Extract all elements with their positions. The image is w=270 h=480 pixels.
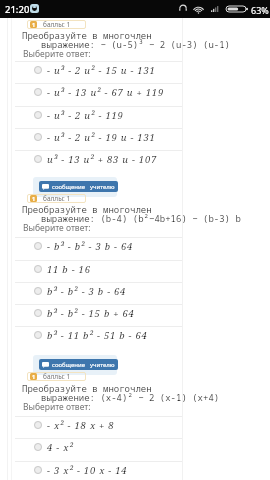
button[interactable]: 1 — [27, 20, 86, 29]
button[interactable]: 1 — [27, 194, 86, 203]
staticText: выражение: (b-4) (b²−4b+16) − (b-3) b — [41, 212, 241, 224]
button[interactable]: − b³ − b² − 3 b − 64 — [15, 237, 182, 259]
button[interactable]: − u³ − 2 u² − 119 — [15, 106, 182, 128]
button[interactable]: b³ − b² − 3 b − 64 — [15, 282, 182, 304]
button[interactable]: 4 − x² — [15, 438, 182, 460]
staticText: баллы: 1 — [43, 372, 71, 381]
staticText: b³ − b² − 3 b − 64 — [47, 285, 127, 298]
staticText: учителю — [90, 183, 115, 191]
staticText: Выберите ответ: — [23, 48, 91, 60]
button[interactable]: − x² − 18 x + 8 — [15, 416, 182, 438]
staticText: − u³ − 2 u² − 19 u − 131 — [47, 131, 156, 144]
button[interactable]: u³ − 13 u² + 83 u − 107 — [15, 150, 182, 172]
staticText: баллы: 1 — [43, 20, 71, 29]
staticText: 4 − x² — [47, 441, 74, 454]
staticText: выражение: − (u-5)³ − 2 (u-3) (u-1) — [41, 38, 231, 50]
staticText: Выберите ответ: — [23, 401, 91, 413]
button[interactable]: 1 — [27, 372, 86, 381]
staticText: 1 — [32, 195, 36, 202]
staticText: 1 — [32, 21, 36, 28]
staticText: выражение: (x-4)² − 2 (x-1) (x+4) — [41, 391, 220, 403]
staticText: сообщение — [52, 183, 86, 191]
staticText: Преобразуйте в многочлен — [22, 382, 152, 394]
button[interactable]: − u³ − 13 u² − 67 u + 119 — [15, 83, 182, 105]
staticText: учителю — [90, 361, 115, 369]
button[interactable]: сообщение — [39, 181, 118, 192]
staticText: − u³ − 2 u² − 15 u − 131 — [47, 64, 156, 77]
staticText: − 3 x² − 10 x − 14 — [47, 464, 128, 477]
staticText: − b³ − b² − 3 b − 64 — [47, 240, 134, 253]
button[interactable]: 11 b − 16 — [15, 260, 182, 282]
button[interactable]: b³ − b² − 15 b + 64 — [15, 304, 182, 326]
staticText: 21:20 — [5, 3, 30, 16]
staticText: 63% — [251, 4, 269, 16]
staticText: Выберите ответ: — [23, 222, 91, 234]
staticText: баллы: 1 — [43, 194, 71, 203]
staticText: − x² − 18 x + 8 — [47, 419, 115, 432]
staticText: − u³ − 13 u² − 67 u + 119 — [47, 86, 164, 99]
staticText: 1 — [32, 373, 36, 380]
button[interactable]: − u³ − 2 u² − 19 u − 131 — [15, 128, 182, 150]
staticText: b³ − b² − 15 b + 64 — [47, 307, 135, 320]
staticText: Преобразуйте в многочлен — [22, 203, 152, 215]
staticText: Преобразуйте в многочлен — [22, 29, 152, 41]
staticText: − u³ − 2 u² − 119 — [47, 109, 124, 122]
staticText: b³ − 11 b² − 51 b − 64 — [47, 329, 148, 342]
staticText: сообщение — [52, 361, 86, 369]
button[interactable]: − u³ − 2 u² − 15 u − 131 — [15, 61, 182, 83]
button[interactable]: сообщение — [39, 359, 118, 370]
button[interactable]: − 3 x² − 10 x − 14 — [15, 461, 182, 480]
staticText: u³ − 13 u² + 83 u − 107 — [47, 153, 158, 166]
button[interactable]: b³ − 11 b² − 51 b − 64 — [15, 326, 182, 348]
staticText: 11 b − 16 — [47, 263, 91, 276]
